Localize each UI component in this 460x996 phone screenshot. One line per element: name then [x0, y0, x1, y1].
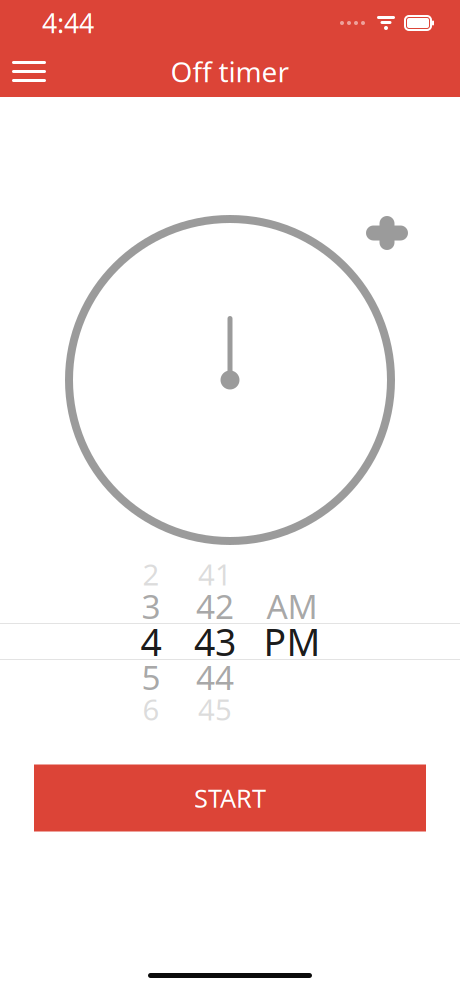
staticText: 6 — [142, 689, 159, 728]
staticText: 42 — [196, 584, 234, 628]
staticText: 3 — [141, 584, 160, 628]
staticText: 43 — [194, 617, 236, 666]
staticText: Off timer — [170, 53, 289, 90]
staticText: PM — [263, 617, 320, 666]
staticText: 2 — [142, 554, 159, 593]
staticText: START — [194, 781, 266, 815]
staticText: 4:44 — [42, 5, 94, 41]
staticText: AM — [266, 584, 317, 628]
staticText: 45 — [198, 689, 232, 728]
button[interactable]: Menu — [0, 46, 58, 97]
staticText: 41 — [198, 554, 232, 593]
button[interactable]: START — [34, 764, 426, 831]
staticText: 44 — [196, 655, 234, 699]
staticText: 5 — [141, 655, 160, 699]
staticText: 4 — [140, 617, 161, 666]
